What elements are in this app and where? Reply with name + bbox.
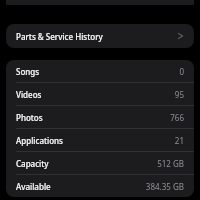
button[interactable]: Photos — [6, 106, 194, 128]
button[interactable]: Parts & Service History — [6, 24, 194, 48]
staticText: 512 GB — [157, 158, 184, 169]
staticText: Photos — [16, 112, 43, 123]
staticText: 766 — [170, 112, 184, 123]
staticText: Available — [16, 181, 51, 192]
staticText: Applications — [16, 135, 63, 146]
button[interactable]: Songs — [6, 60, 194, 82]
other: Open Parts and Service History — [176, 31, 186, 41]
staticText: Parts & Service History — [16, 31, 103, 42]
button[interactable]: Videos — [6, 83, 194, 105]
staticText: 384.35 GB — [145, 181, 184, 192]
staticText: 0 — [179, 66, 184, 77]
button[interactable]: Applications — [6, 129, 194, 151]
staticText: Videos — [16, 89, 42, 100]
staticText: 95 — [174, 89, 184, 100]
staticText: Capacity — [16, 158, 49, 169]
staticText: 21 — [174, 135, 184, 146]
button[interactable]: Capacity — [6, 152, 194, 174]
staticText: Songs — [16, 66, 40, 77]
button[interactable]: Available — [6, 175, 194, 197]
